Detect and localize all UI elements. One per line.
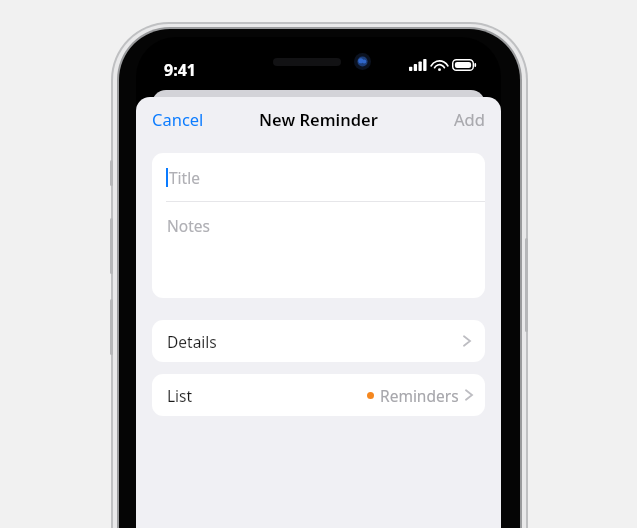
staticText: 9:41 [164,59,196,81]
staticText: Cancel [152,108,204,130]
staticText: Add [454,108,485,130]
staticText: List [167,385,193,406]
other: Volume down [110,299,113,355]
staticText: Details [167,331,217,352]
staticText: Title [169,167,200,188]
staticText: Reminders [380,385,459,406]
staticText: Notes [167,215,210,236]
other: Silent switch [110,160,113,186]
button[interactable]: Cancel [136,102,220,136]
staticText: New Reminder [259,108,378,130]
other: Volume up [110,218,113,274]
button[interactable]: List [152,374,485,416]
button[interactable]: Add [438,102,501,136]
button[interactable]: Details [152,320,485,362]
button[interactable]: Title [152,153,485,201]
button[interactable]: Notes [152,202,485,298]
